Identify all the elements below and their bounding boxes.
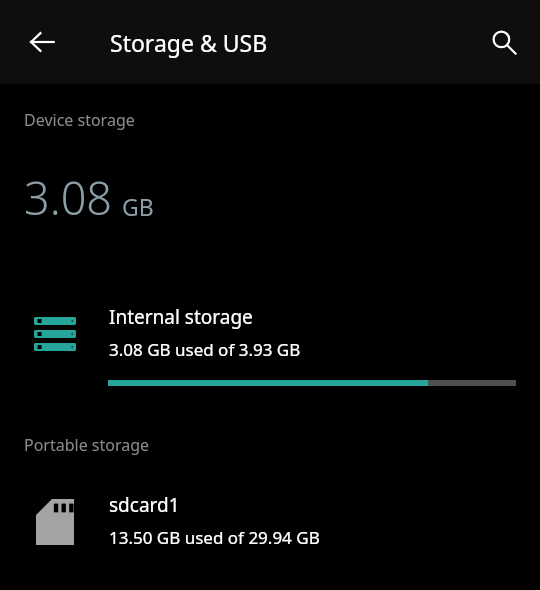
staticText: 3.08 GB used of 3.93 GB bbox=[109, 338, 301, 361]
staticText: 13.50 GB used of 29.94 GB bbox=[109, 526, 320, 549]
button[interactable]: sdcard1 bbox=[0, 492, 540, 552]
button[interactable]: Back bbox=[18, 18, 66, 66]
staticText: Device storage bbox=[24, 109, 135, 131]
staticText: GB bbox=[122, 191, 154, 222]
staticText: 3.08 bbox=[24, 167, 113, 228]
staticText: Portable storage bbox=[24, 434, 150, 456]
staticText: Storage & USB bbox=[110, 27, 268, 58]
staticText: sdcard1 bbox=[109, 492, 180, 518]
button[interactable]: Internal storage bbox=[0, 304, 540, 386]
button[interactable]: Search bbox=[480, 18, 528, 66]
staticText: Internal storage bbox=[109, 304, 253, 330]
